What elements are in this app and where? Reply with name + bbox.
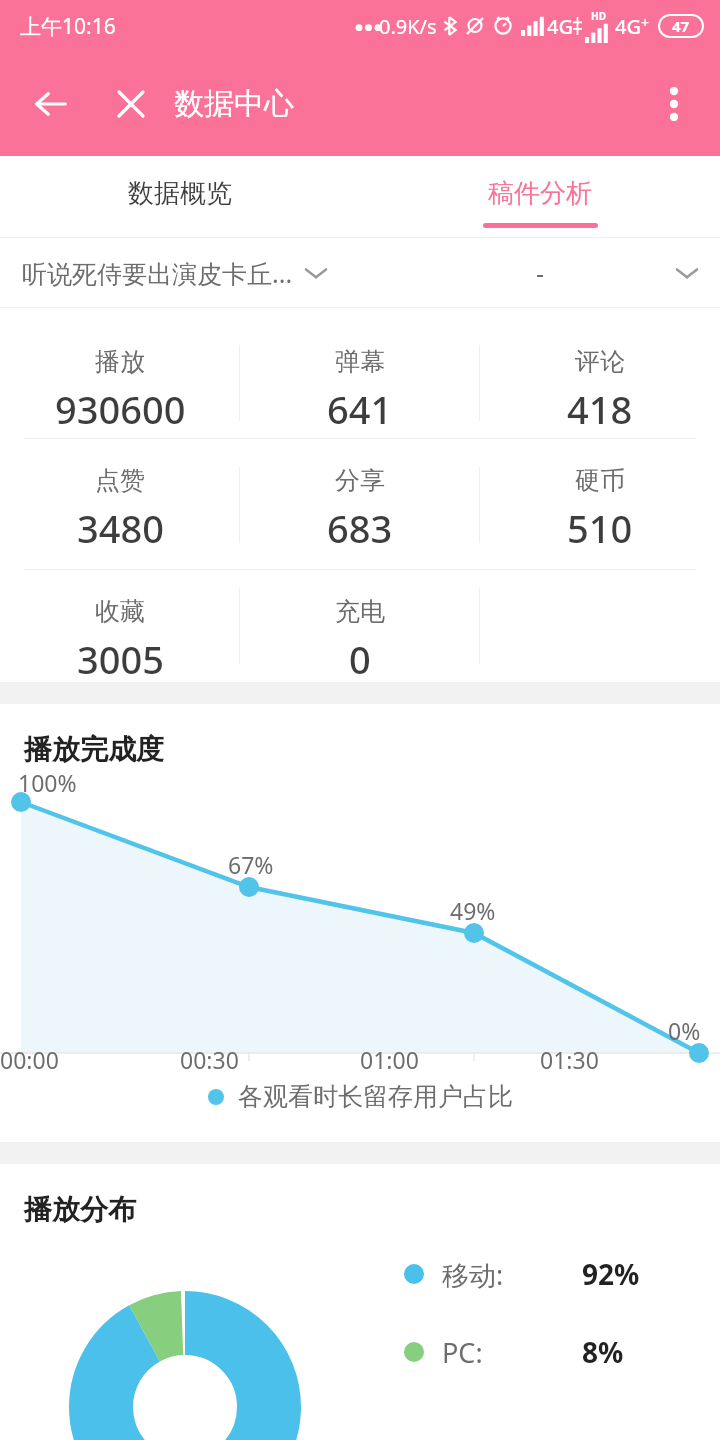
staticText: 0% [668,1015,701,1046]
staticText: PC: [442,1334,483,1371]
staticText: 49% [450,895,496,926]
staticText: 播放完成度 [24,732,164,767]
staticText: 4G [547,13,573,40]
staticText: 点赞 [95,465,145,496]
staticText: 0.9K/s [379,13,437,40]
staticText: 上午10:16 [20,12,116,41]
staticText: 01:00 [360,1044,419,1075]
staticText: 3480 [77,502,164,554]
staticText: 各观看时长留存用户占比 [238,1081,513,1112]
staticText: 充电 [335,596,385,627]
staticText: 数据概览 [128,177,232,210]
staticText: 930600 [55,383,186,435]
staticText: 4G [615,13,641,40]
button[interactable]: 数据概览 [0,156,360,238]
button[interactable]: 听说死侍要出演皮卡丘... [0,238,360,308]
staticText: 播放 [95,346,145,377]
staticText: 01:30 [540,1044,599,1075]
staticText: 评论 [575,346,625,377]
staticText: 0 [349,633,371,682]
staticText: 8% [582,1333,624,1371]
staticText: 418 [567,383,633,435]
staticText: 移动: [442,1256,504,1293]
staticText: 67% [228,849,274,880]
staticText: 100% [18,767,77,798]
staticText: 数据中心 [174,85,294,123]
staticText: 92% [582,1255,640,1293]
button[interactable]: 稿件分析 [360,156,720,238]
staticText: 收藏 [95,596,145,627]
staticText: 稿件分析 [488,177,592,210]
button[interactable]: - [360,238,720,308]
staticText: 弹幕 [335,346,385,377]
staticText: 播放分布 [24,1192,136,1227]
button[interactable]: Back [16,69,86,139]
staticText: - [536,256,545,290]
staticText: 硬币 [575,465,625,496]
staticText: 683 [327,502,393,554]
staticText: 00:00 [0,1044,59,1075]
staticText: + [641,13,650,32]
staticText: 510 [567,502,633,554]
staticText: 641 [327,383,393,435]
staticText: 00:30 [180,1044,239,1075]
staticText: HD [591,9,606,23]
button[interactable]: More options [642,72,706,136]
staticText: 47 [672,16,690,36]
staticText: 分享 [335,465,385,496]
staticText: 3005 [77,633,164,682]
staticText: 听说死侍要出演皮卡丘... [22,256,293,290]
button[interactable]: Close [99,72,163,136]
